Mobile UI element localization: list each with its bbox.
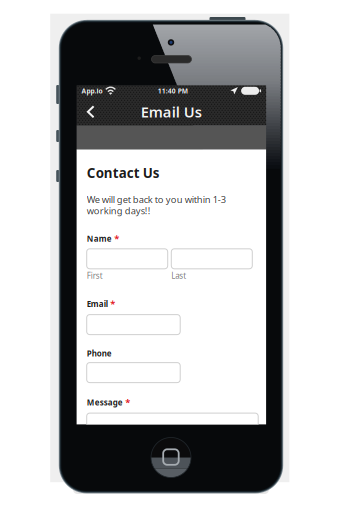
- staticText: We will get back to you within 1-3: [87, 193, 226, 206]
- staticText: *: [114, 232, 119, 245]
- staticText: Contact Us: [87, 164, 160, 182]
- staticText: working days!!: [87, 204, 151, 217]
- staticText: Last: [171, 270, 186, 281]
- staticText: First: [87, 270, 103, 281]
- staticText: 11:40 PM: [158, 86, 188, 95]
- staticText: *: [125, 396, 130, 409]
- staticText: App.io: [82, 86, 103, 95]
- staticText: Phone: [87, 348, 112, 359]
- staticText: Email Us: [141, 102, 202, 122]
- staticText: Email: [87, 299, 108, 309]
- staticText: Message: [87, 397, 123, 408]
- staticText: Name: [87, 233, 112, 244]
- staticText: *: [110, 298, 115, 310]
- button[interactable]: Back: [77, 97, 105, 126]
